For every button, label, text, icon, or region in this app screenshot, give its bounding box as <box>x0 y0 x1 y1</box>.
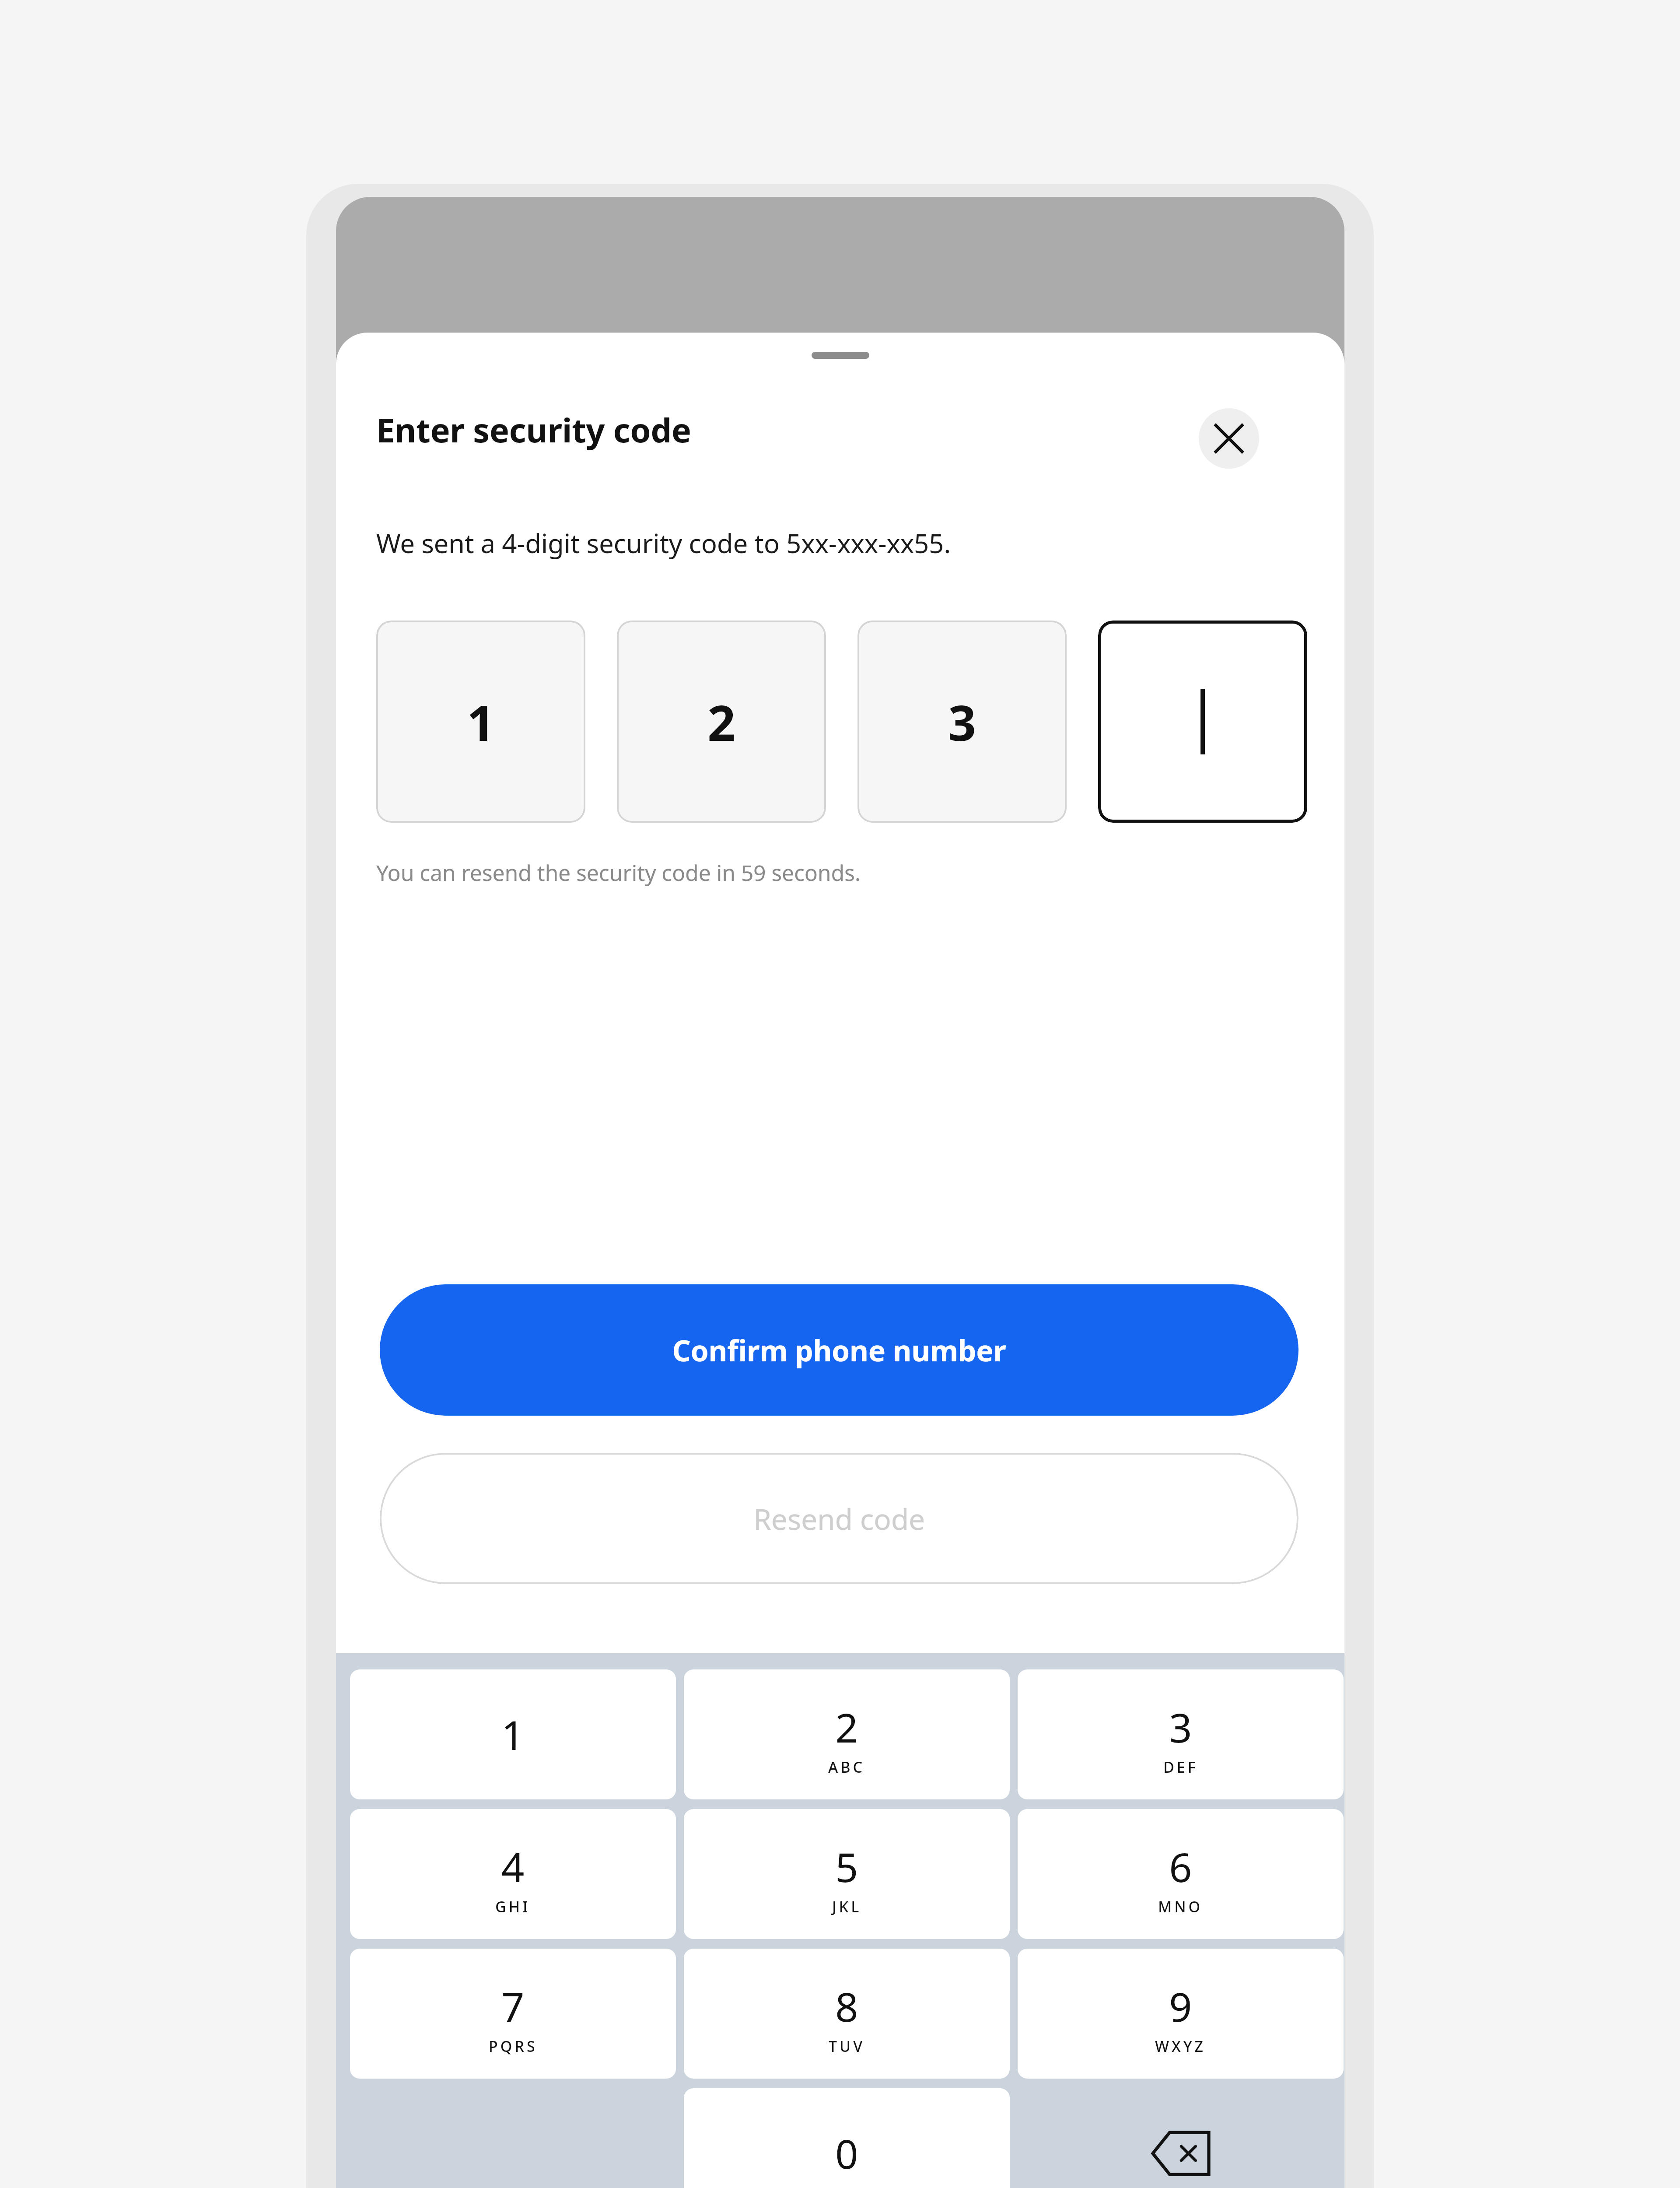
button[interactable]: Resend code <box>380 1453 1298 1584</box>
button[interactable]: 9 <box>1018 1949 1344 2079</box>
staticText: 5 <box>835 1839 858 1894</box>
staticText: 7 <box>501 1979 525 2034</box>
staticText: 8 <box>835 1979 858 2034</box>
button[interactable]: Close <box>1199 408 1259 469</box>
staticText: 4 <box>501 1839 525 1894</box>
staticText: 6 <box>1169 1839 1192 1894</box>
button[interactable]: 2 <box>617 621 826 823</box>
button[interactable]: 5 <box>684 1809 1010 1939</box>
staticText: TUV <box>829 2036 865 2056</box>
staticText: ABC <box>828 1757 865 1777</box>
button[interactable]: 8 <box>684 1949 1010 2079</box>
staticText: 1 <box>501 1707 525 1762</box>
button[interactable]: Confirm phone number <box>380 1284 1298 1416</box>
button[interactable]: 3 <box>1018 1669 1344 1799</box>
staticText: MNO <box>1158 1897 1203 1917</box>
staticText: PQRS <box>489 2036 538 2056</box>
button[interactable]: 4 <box>350 1809 676 1939</box>
button[interactable]: 1 <box>376 621 585 823</box>
staticText: 9 <box>1169 1979 1192 2034</box>
staticText: We sent a 4-digit security code to 5xx-x… <box>376 525 951 561</box>
staticText: 2 <box>707 688 736 755</box>
button[interactable]: 7 <box>350 1949 676 2079</box>
staticText: WXYZ <box>1155 2036 1206 2056</box>
button[interactable]: 1 <box>350 1669 676 1799</box>
staticText: JKL <box>832 1897 862 1917</box>
button[interactable]: 6 <box>1018 1809 1344 1939</box>
button[interactable]: 3 <box>857 621 1067 823</box>
button[interactable]: Backspace <box>1018 2088 1344 2188</box>
button[interactable]: 0 <box>684 2088 1010 2188</box>
staticText: 3 <box>1169 1700 1192 1754</box>
staticText: Enter security code <box>376 407 691 452</box>
staticText: 3 <box>948 688 976 755</box>
button[interactable]: 2 <box>684 1669 1010 1799</box>
staticText: Confirm phone number <box>672 1330 1006 1370</box>
staticText: 1 <box>467 688 495 755</box>
staticText: 0 <box>835 2126 858 2181</box>
button[interactable] <box>1098 621 1307 823</box>
staticText: You can resend the security code in 59 s… <box>376 858 861 887</box>
staticText: DEF <box>1163 1757 1198 1777</box>
staticText: GHI <box>495 1897 531 1917</box>
staticText: 2 <box>835 1700 858 1754</box>
staticText: Resend code <box>753 1499 925 1538</box>
